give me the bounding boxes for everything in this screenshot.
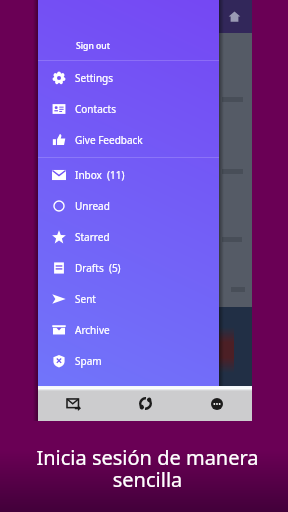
staticText: Settings (75, 71, 114, 85)
button[interactable]: Spam (38, 345, 219, 376)
staticText: Inicia sesión de manera sencilla (36, 444, 259, 493)
button[interactable]: Settings (38, 62, 219, 93)
staticText: Spam (75, 354, 102, 368)
button[interactable]: Give Feedback (38, 124, 219, 155)
staticText: Sign out (76, 40, 110, 52)
staticText: Give Feedback (75, 133, 143, 147)
button[interactable]: Compose mail (38, 386, 110, 421)
button[interactable]: Sign out (38, 31, 219, 60)
button[interactable]: Sent (38, 283, 219, 314)
staticText: Starred (75, 230, 110, 244)
staticText: Sent (75, 292, 96, 306)
button[interactable]: Starred (38, 221, 219, 252)
button[interactable]: Unread (38, 190, 219, 221)
staticText: Unread (75, 199, 110, 213)
staticText: Inbox (11) (75, 168, 125, 182)
staticText: Drafts (5) (75, 261, 121, 275)
button[interactable]: Inbox (11) (38, 159, 219, 190)
button[interactable]: Refresh (110, 386, 181, 421)
button[interactable]: Drafts (5) (38, 252, 219, 283)
button[interactable]: Contacts (38, 93, 219, 124)
staticText: Archive (75, 323, 110, 337)
staticText: Contacts (75, 102, 116, 116)
button[interactable]: More options (181, 386, 252, 421)
button[interactable]: Archive (38, 314, 219, 345)
